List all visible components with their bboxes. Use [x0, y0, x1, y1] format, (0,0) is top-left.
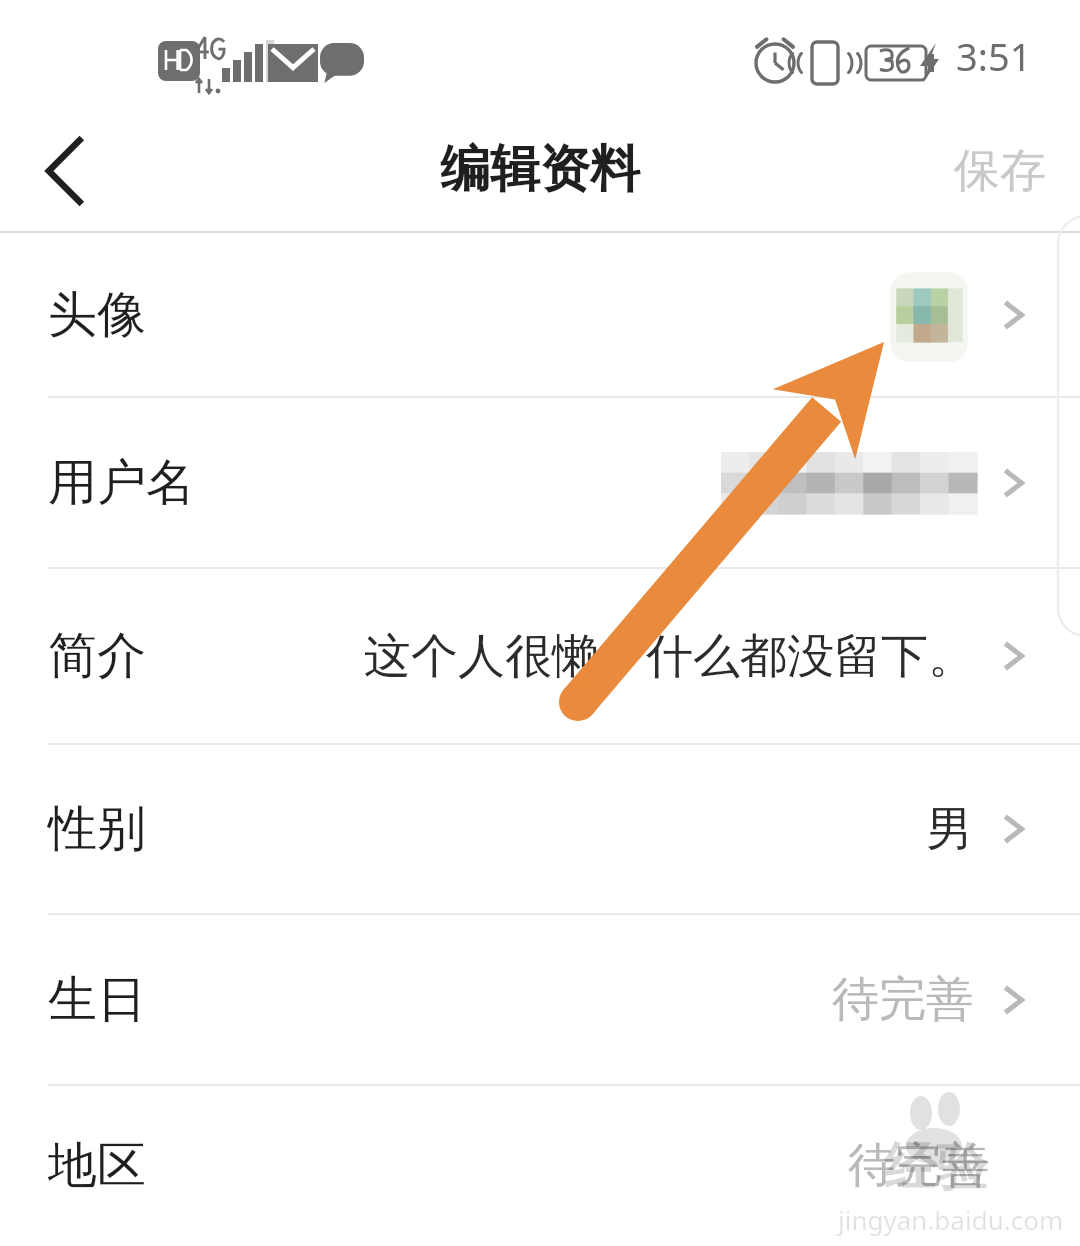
button[interactable]: 头像: [0, 233, 1080, 397]
staticText: 生日: [48, 969, 146, 1031]
staticText: 用户名: [48, 452, 195, 514]
staticText: 待完善: [832, 970, 973, 1029]
staticText: 经验: [884, 1135, 988, 1201]
staticText: 头像: [48, 284, 146, 346]
button[interactable]: 生日: [0, 914, 1080, 1085]
button[interactable]: 返回: [20, 123, 116, 219]
button[interactable]: 性别: [0, 744, 1080, 914]
staticText: 编辑资料: [440, 138, 640, 201]
button[interactable]: 保存: [920, 122, 1080, 220]
staticText: 男: [926, 800, 973, 859]
staticText: 保存: [954, 142, 1046, 200]
staticText: 性别: [48, 798, 146, 860]
staticText: 简介: [48, 625, 146, 687]
staticText: 地区: [48, 1135, 146, 1197]
staticText: 这个人很懒，什么都没留下。: [364, 627, 975, 686]
staticText: 3:51: [956, 30, 1032, 82]
staticText: 待完善: [848, 1136, 989, 1195]
button[interactable]: 用户名: [0, 397, 1080, 568]
staticText: jingyan.baidu.com: [838, 1202, 1064, 1237]
button[interactable]: 地区: [0, 1085, 1080, 1246]
button[interactable]: 简介: [0, 568, 1080, 744]
